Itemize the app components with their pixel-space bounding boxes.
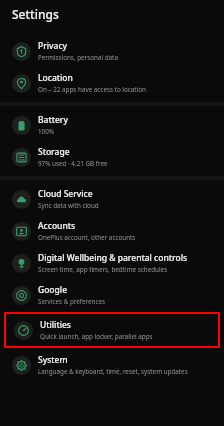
staticText: Battery xyxy=(38,114,68,126)
staticText: 100% xyxy=(38,127,55,136)
staticText: 97% used · 4.21 GB free xyxy=(38,159,108,168)
staticText: Storage xyxy=(38,146,70,158)
staticText: Screen time, app timers, bedtime schedul… xyxy=(38,265,168,274)
button[interactable]: Digital Wellbeing & parental controls xyxy=(0,247,224,279)
staticText: Quick launch, app locker, parallel apps xyxy=(40,332,153,341)
staticText: On – 22 apps have access to location xyxy=(38,85,146,94)
staticText: Services & preferences xyxy=(38,297,106,306)
staticText: Privacy xyxy=(38,40,68,52)
button[interactable]: Google xyxy=(0,279,224,311)
staticText: Cloud Service xyxy=(38,188,93,200)
staticText: System xyxy=(38,354,68,366)
staticText: Utilities xyxy=(40,319,71,331)
button[interactable]: Battery xyxy=(0,109,224,141)
staticText: Sync data with cloud xyxy=(38,201,99,210)
button[interactable]: System xyxy=(0,349,224,381)
staticText: Language & keyboard, time, reset, system… xyxy=(38,367,188,376)
button[interactable]: Location xyxy=(0,67,224,99)
button[interactable]: Cloud Service xyxy=(0,183,224,215)
button[interactable]: Privacy xyxy=(0,35,224,67)
staticText: Accounts xyxy=(38,220,76,232)
staticText: Digital Wellbeing & parental controls xyxy=(38,252,188,264)
button[interactable]: Utilities xyxy=(6,314,218,346)
staticText: Google xyxy=(38,284,68,296)
staticText: Settings xyxy=(12,6,59,22)
button[interactable]: Accounts xyxy=(0,215,224,247)
staticText: OnePlus account, other accounts xyxy=(38,233,136,242)
button[interactable]: Storage xyxy=(0,141,224,173)
staticText: Permissions, personal data xyxy=(38,53,118,62)
staticText: Location xyxy=(38,72,73,84)
